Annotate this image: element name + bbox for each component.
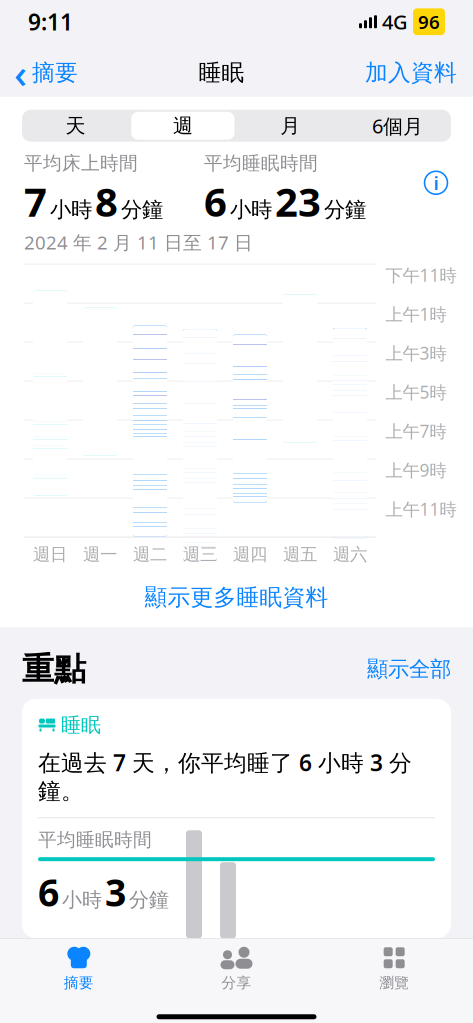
staticText: 睡眠 (198, 59, 244, 87)
staticText: 平均睡眠時間 (38, 828, 152, 851)
button[interactable]: 週 (129, 110, 236, 142)
staticText: ‹ (14, 46, 27, 99)
button[interactable]: 分享 (158, 938, 315, 992)
button[interactable]: 瀏覽 (315, 938, 473, 992)
staticText: 分享 (221, 974, 251, 992)
staticText: 週三 (183, 544, 217, 565)
staticText: 6 (204, 175, 227, 228)
button[interactable]: 摘要 (0, 938, 158, 992)
staticText: 平均床上時間 (24, 152, 138, 175)
staticText: 上午7時 (385, 420, 446, 443)
button[interactable]: 加入資料 (365, 53, 473, 93)
staticText: 週六 (333, 544, 367, 565)
staticText: 週四 (233, 544, 267, 565)
staticText: 顯示更多睡眠資料 (144, 584, 328, 611)
staticText: 小時 (62, 887, 102, 912)
staticText: 上午5時 (385, 381, 446, 404)
button[interactable]: 睡眠 (22, 699, 451, 938)
staticText: 睡眠 (61, 713, 101, 737)
staticText: 8 (95, 175, 118, 228)
staticText: 分鐘 (324, 197, 366, 223)
staticText: 9:11 (28, 7, 73, 37)
staticText: 上午3時 (385, 342, 446, 365)
staticText: 天 (66, 113, 86, 138)
staticText: 摘要 (32, 59, 78, 87)
staticText: 週五 (283, 544, 317, 565)
staticText: 23 (275, 175, 321, 228)
staticText: 週二 (133, 544, 167, 565)
staticText: 月 (280, 113, 300, 138)
staticText: 6 (38, 867, 59, 917)
staticText: 週一 (83, 544, 117, 565)
button[interactable]: 天 (22, 110, 129, 142)
staticText: 上午11時 (385, 498, 456, 521)
staticText: 上午1時 (385, 303, 446, 326)
button[interactable]: 顯示全部 (367, 656, 451, 682)
staticText: i (433, 170, 438, 195)
staticText: 平均睡眠時間 (204, 152, 318, 175)
staticText: 小時 (230, 197, 272, 223)
staticText: 週 (173, 113, 193, 138)
staticText: 上午9時 (385, 459, 446, 482)
staticText: 摘要 (64, 974, 94, 992)
staticText: 96 (418, 9, 440, 34)
staticText: 瀏覽 (379, 974, 409, 992)
staticText: 分鐘 (129, 887, 169, 912)
staticText: 顯示全部 (367, 656, 451, 682)
staticText: 在過去 7 天，你平均睡了 6 小時 3 分鐘。 (38, 747, 412, 805)
button[interactable]: 6個月 (344, 110, 451, 142)
staticText: 下午11時 (385, 264, 456, 287)
staticText: 重點 (22, 649, 86, 689)
staticText: 加入資料 (365, 59, 457, 87)
button[interactable]: 顯示更多睡眠資料 (0, 572, 473, 623)
staticText: 2024 年 2 月 11 日至 17 日 (24, 230, 253, 255)
staticText: 週日 (33, 544, 67, 565)
button[interactable]: 資訊 (423, 152, 449, 196)
staticText: 3 (105, 867, 126, 917)
button[interactable]: 月 (236, 110, 344, 142)
staticText: 4G (377, 8, 413, 35)
staticText: 6個月 (372, 112, 423, 139)
staticText: 小時 (50, 197, 92, 223)
staticText: 分鐘 (121, 197, 163, 223)
staticText: 7 (24, 175, 47, 228)
button[interactable]: ‹ (0, 40, 78, 105)
